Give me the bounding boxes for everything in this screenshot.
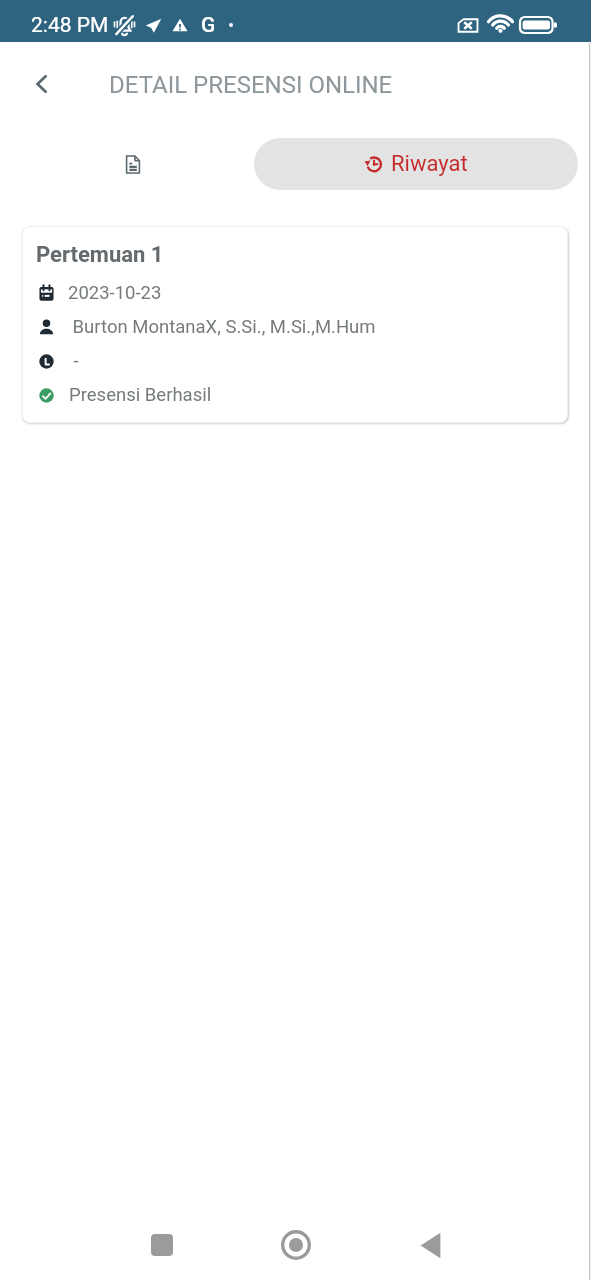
staticText: - [69,350,79,372]
staticText: Pertemuan 1 [36,242,164,268]
staticText: 2:48 PM [31,13,109,38]
button[interactable]: Detail [0,138,254,190]
button[interactable]: Pertemuan 1 [22,226,568,423]
button[interactable]: Back [399,1214,461,1276]
staticText: Presensi Berhasil [69,384,212,406]
staticText: DETAIL PRESENSI ONLINE [109,71,393,99]
staticText: Burton MontanaX, S.Si., M.Si.,M.Hum [68,316,376,338]
staticText: 2023-10-23 [68,282,162,304]
button[interactable]: Recent apps [131,1214,193,1276]
staticText: Riwayat [391,151,468,177]
button[interactable]: Back [19,62,63,106]
button[interactable]: Riwayat [254,138,578,190]
staticText: G [201,13,216,38]
button[interactable]: Home [265,1214,327,1276]
